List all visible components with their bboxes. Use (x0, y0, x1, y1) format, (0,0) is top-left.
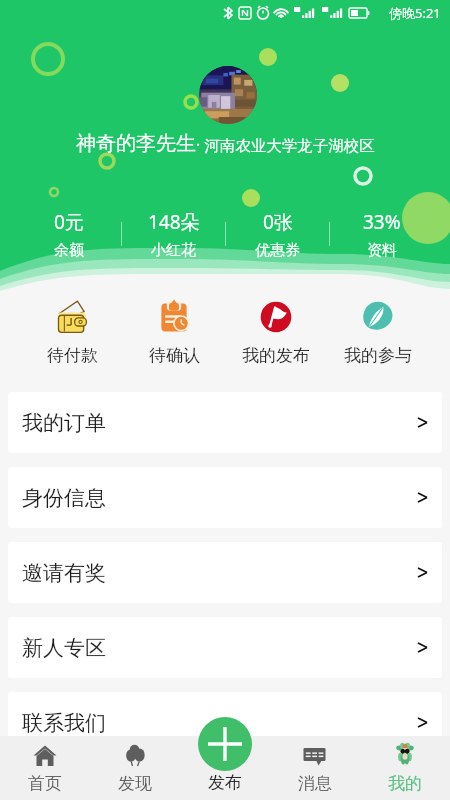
staticText: 0张 (263, 209, 293, 235)
button[interactable]: 我的参与 (327, 285, 429, 380)
button[interactable]: 我的发布 (225, 285, 327, 380)
button[interactable]: 联系我们 (8, 692, 442, 753)
staticText: 身份信息 (22, 485, 106, 511)
staticText: 0元 (54, 209, 84, 235)
button[interactable]: 首页 (0, 736, 90, 800)
button[interactable]: 身份信息 (8, 467, 442, 528)
button[interactable]: 邀请有奖 (8, 542, 442, 603)
staticText: 148朵 (148, 209, 200, 235)
button[interactable]: 新人专区 (8, 617, 442, 678)
button[interactable]: 发现 (90, 736, 180, 800)
staticText: 我的 (388, 773, 422, 794)
staticText: 首页 (28, 773, 62, 794)
staticText: 资料 (367, 241, 397, 260)
button[interactable]: 我的订单 (8, 392, 442, 453)
staticText: 余额 (54, 241, 84, 260)
staticText: 消息 (298, 773, 332, 794)
staticText: 我的发布 (242, 345, 310, 366)
staticText: 傍晚5:21 (389, 4, 441, 22)
staticText: 新人专区 (22, 635, 106, 661)
other: 发布 (208, 727, 242, 761)
staticText: 联系我们 (22, 710, 106, 736)
staticText: 小红花 (151, 241, 196, 260)
staticText: 发布 (208, 772, 242, 793)
staticText: 我的订单 (22, 410, 106, 436)
staticText: 待付款 (47, 345, 98, 366)
button[interactable]: 待付款 (21, 285, 123, 380)
staticText: 优惠券 (255, 241, 300, 260)
staticText: 待确认 (149, 345, 200, 366)
button[interactable]: 消息 (270, 736, 360, 800)
button[interactable]: 发布 (180, 736, 270, 800)
staticText: 邀请有奖 (22, 560, 106, 586)
staticText: 发现 (118, 773, 152, 794)
staticText: 我的参与 (344, 345, 412, 366)
button[interactable]: 我的 (360, 736, 450, 800)
staticText: · 河南农业大学龙子湖校区 (196, 134, 375, 155)
staticText: 33% (363, 209, 401, 235)
button[interactable]: 待确认 (123, 285, 225, 380)
staticText: 神奇的李先生 (76, 131, 196, 156)
